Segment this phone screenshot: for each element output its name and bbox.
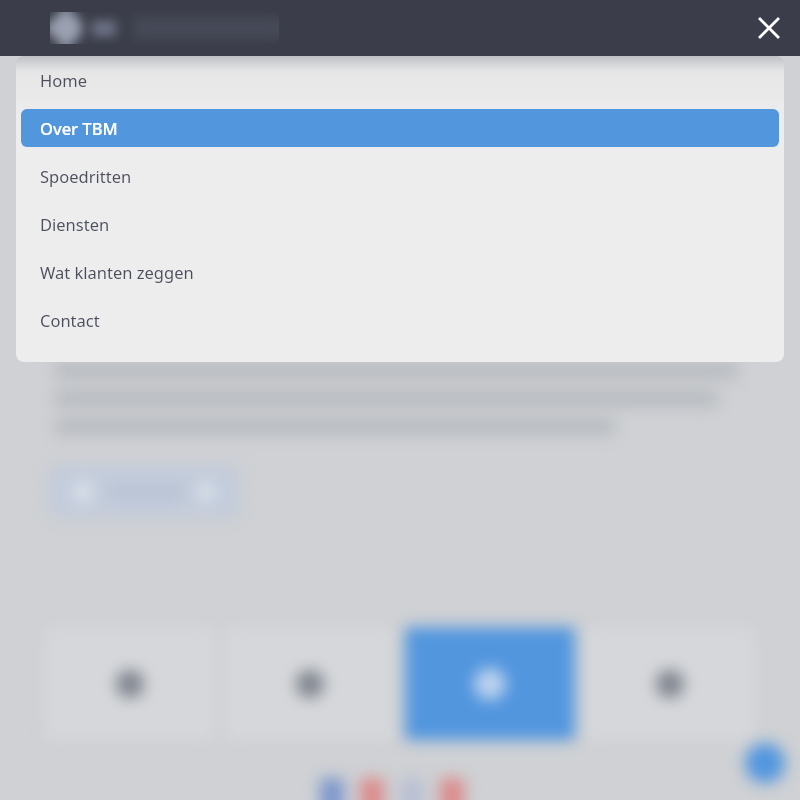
button[interactable]: Home bbox=[21, 61, 779, 99]
staticText: Contact bbox=[40, 309, 100, 331]
button[interactable] bbox=[48, 465, 240, 518]
staticText: Home bbox=[40, 69, 87, 91]
staticText: Diensten bbox=[40, 213, 110, 235]
button[interactable] bbox=[585, 627, 755, 740]
button[interactable]: Wat klanten zeggen bbox=[21, 253, 779, 291]
button[interactable] bbox=[225, 627, 395, 740]
staticText: Wat klanten zeggen bbox=[40, 261, 194, 283]
button[interactable]: Over TBM bbox=[21, 109, 779, 147]
button[interactable] bbox=[45, 627, 215, 740]
button[interactable]: Spoedritten bbox=[21, 157, 779, 195]
staticText: Spoedritten bbox=[40, 165, 132, 187]
button[interactable] bbox=[405, 627, 575, 740]
button[interactable]: Close menu bbox=[745, 4, 793, 52]
button[interactable]: Contact bbox=[21, 301, 779, 339]
button[interactable]: Diensten bbox=[21, 205, 779, 243]
staticText: Over TBM bbox=[40, 117, 118, 139]
